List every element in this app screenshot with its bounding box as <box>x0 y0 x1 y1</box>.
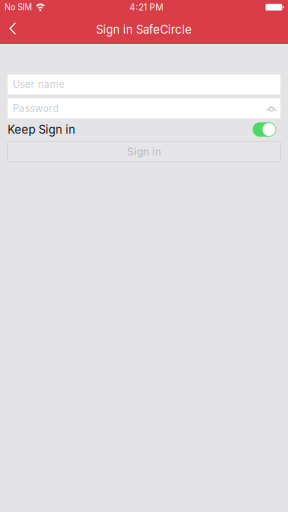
staticText: Password <box>13 102 59 114</box>
button[interactable]: User name <box>8 74 280 94</box>
staticText: User name <box>13 78 65 90</box>
staticText: 4:21 PM <box>130 2 164 12</box>
button[interactable]: Sign in <box>8 142 280 162</box>
button[interactable]: Keep Sign in <box>253 122 280 137</box>
staticText: No SIM <box>5 2 32 12</box>
button[interactable]: Back <box>0 13 27 44</box>
button[interactable]: Password <box>8 98 280 118</box>
button[interactable]: Show password <box>266 105 277 111</box>
staticText: Sign in SafeCircle <box>96 23 192 37</box>
staticText: Sign in <box>127 145 161 158</box>
staticText: Keep Sign in <box>8 123 76 136</box>
